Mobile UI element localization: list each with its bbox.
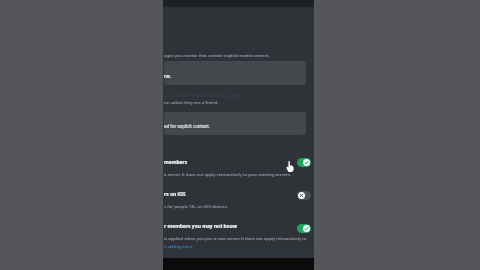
staticText: ages you receive that contain explicit m… — [164, 52, 270, 58]
staticText: ere is no one who can send you a direct — [164, 92, 244, 98]
staticText: s for people 18+ on iOS devices. — [164, 203, 228, 209]
staticText: rs on iOS — [164, 191, 186, 198]
button[interactable]: Switch on — [297, 158, 311, 167]
button[interactable]: ed for explicit content. — [164, 112, 306, 135]
staticText: a server. It does not apply retroactivel… — [164, 171, 292, 177]
staticText: is applied when you join a new server. I… — [164, 235, 307, 241]
staticText: ne unless they are a friend. — [164, 99, 219, 105]
button[interactable]: n setting here — [164, 243, 193, 249]
button[interactable]: Switch on — [297, 224, 311, 233]
button[interactable] — [163, 154, 314, 176]
button[interactable] — [163, 218, 314, 244]
staticText: ed for explicit content. — [164, 123, 211, 129]
button[interactable] — [163, 186, 314, 208]
button[interactable]: ne. — [164, 61, 306, 85]
staticText: ne. — [164, 73, 171, 79]
staticText: members — [164, 159, 188, 166]
staticText: r members you may not know — [164, 223, 237, 230]
button[interactable]: Switch off — [297, 191, 311, 200]
